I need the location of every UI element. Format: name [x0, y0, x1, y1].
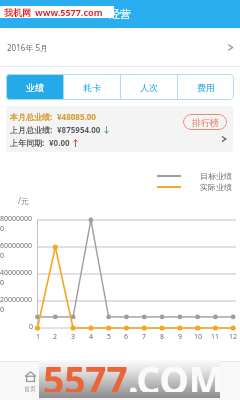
- staticText: 8: [160, 332, 165, 342]
- staticText: 经营: [144, 385, 156, 393]
- staticText: ¥875954.00: [57, 124, 101, 135]
- staticText: 800000000: [0, 214, 34, 234]
- staticText: 1: [36, 332, 41, 342]
- staticText: 本月总业绩:: [10, 111, 53, 122]
- button[interactable]: 人次: [121, 74, 177, 100]
- staticText: 上月总业绩:: [10, 124, 53, 135]
- staticText: 400000000: [0, 268, 34, 288]
- staticText: 经营: [109, 7, 131, 21]
- staticText: 我的: [204, 385, 216, 393]
- staticText: 目标业绩: [200, 171, 232, 180]
- button[interactable]: 经营: [120, 362, 180, 400]
- staticText: 2: [53, 332, 58, 342]
- staticText: 9: [178, 332, 183, 342]
- staticText: 11: [211, 332, 220, 342]
- staticText: 实际业绩: [200, 182, 232, 191]
- staticText: 200000000: [0, 295, 34, 315]
- button[interactable]: 排行榜: [183, 114, 227, 130]
- staticText: 我机网: [4, 7, 31, 18]
- staticText: 7: [142, 332, 147, 342]
- staticText: /元: [18, 195, 29, 206]
- staticText: 耗卡: [83, 82, 101, 93]
- staticText: 3: [71, 332, 76, 342]
- staticText: .COM: [128, 354, 224, 392]
- button[interactable]: 耗卡: [64, 74, 120, 100]
- staticText: ¥0.00: [49, 137, 70, 148]
- staticText: 排行榜: [192, 117, 219, 128]
- staticText: 6: [124, 332, 129, 342]
- staticText: ¥48085.00: [57, 111, 96, 122]
- button[interactable]: 2016年 5月: [0, 28, 240, 66]
- staticText: 600000000: [0, 241, 34, 261]
- staticText: 人次: [140, 82, 158, 93]
- staticText: 业绩: [26, 82, 44, 93]
- button[interactable]: 业绩: [6, 74, 63, 100]
- staticText: 首页: [24, 385, 36, 393]
- staticText: 客户: [84, 385, 96, 393]
- staticText: 5577: [43, 354, 128, 392]
- staticText: 费用: [197, 82, 215, 93]
- button[interactable]: 客户: [60, 362, 120, 400]
- staticText: 上年同期:: [10, 137, 45, 148]
- button[interactable]: More: [218, 133, 230, 145]
- button[interactable]: 首页: [0, 362, 60, 400]
- staticText: www.5577.com: [35, 6, 103, 18]
- staticText: 12: [229, 332, 238, 342]
- staticText: 0: [29, 322, 34, 332]
- staticText: 2016年 5月: [7, 42, 48, 53]
- button[interactable]: 我的: [180, 362, 240, 400]
- staticText: 10: [194, 332, 203, 342]
- button[interactable]: 费用: [178, 74, 234, 100]
- staticText: 5: [107, 332, 112, 342]
- staticText: 4: [89, 332, 94, 342]
